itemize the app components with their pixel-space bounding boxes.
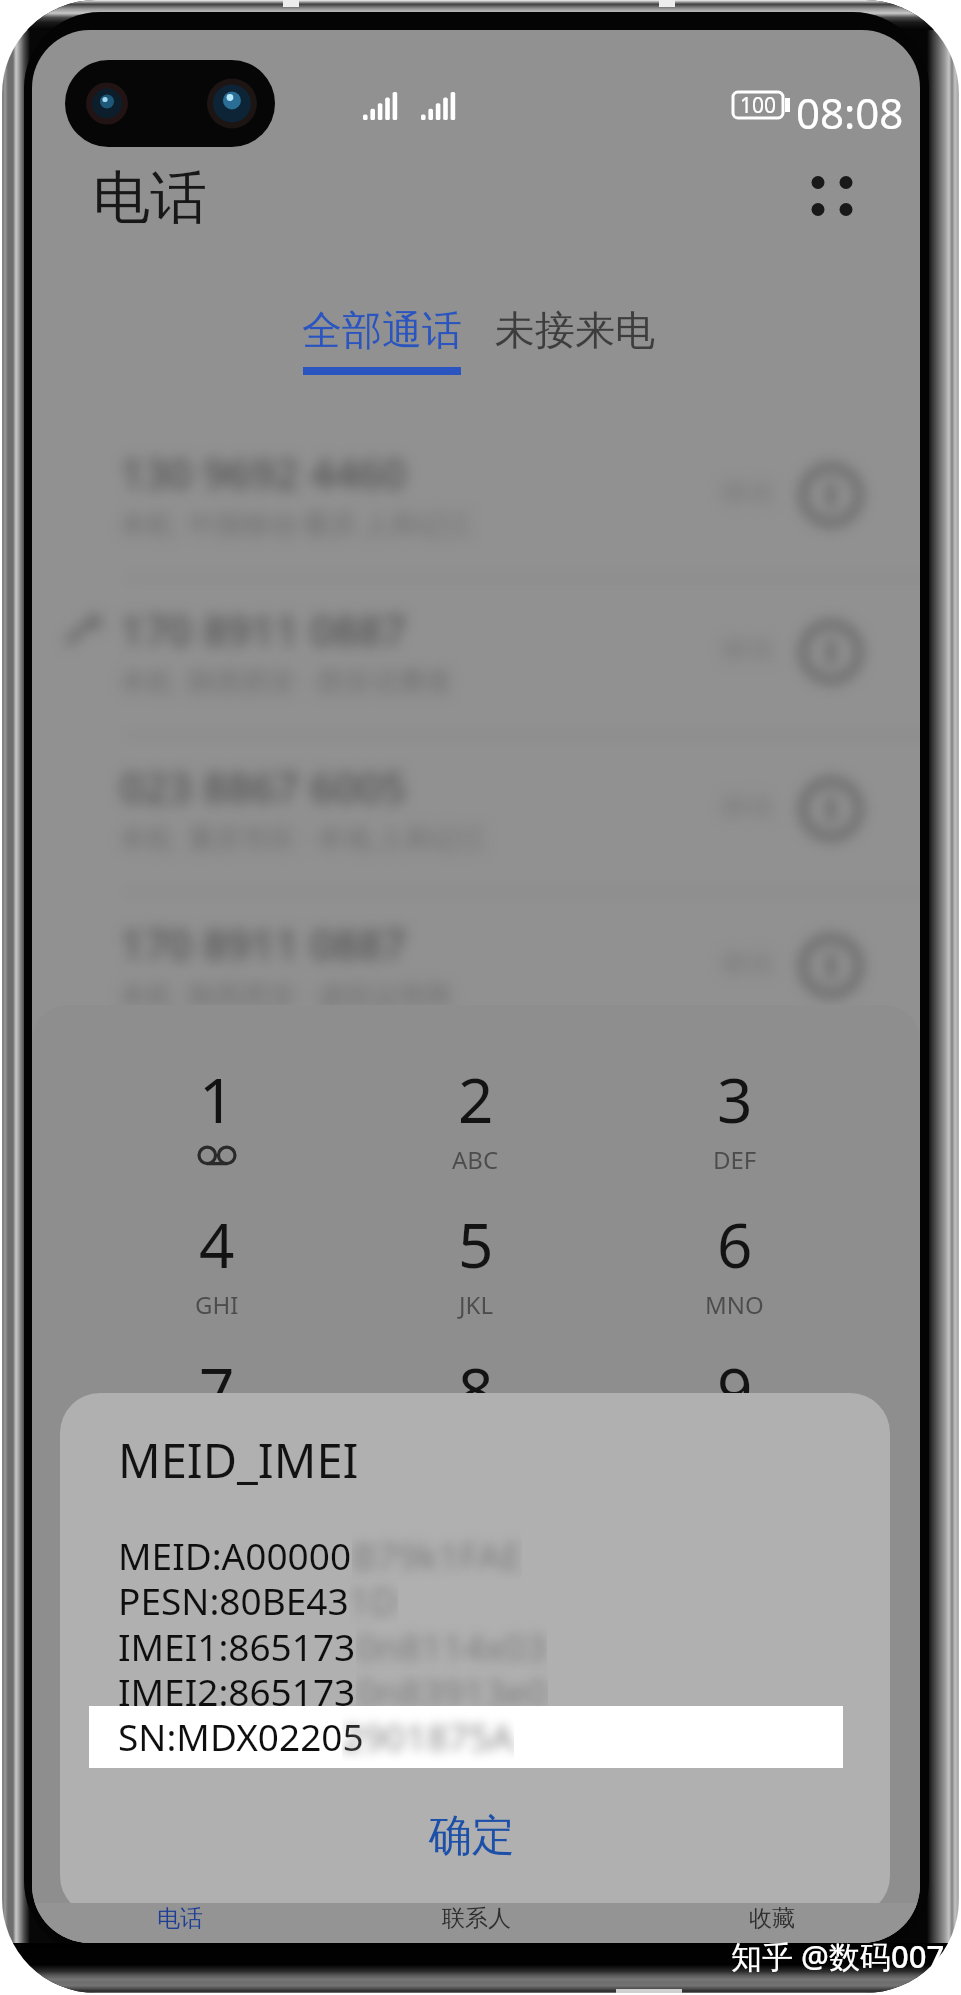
staticText: MEID_IMEI	[118, 1428, 359, 1492]
staticText: 08:08	[796, 84, 904, 141]
button[interactable]: 023 8867 6005	[32, 734, 920, 891]
staticText: 确定	[429, 1809, 515, 1863]
staticText: B79k1FAE	[352, 1530, 522, 1580]
button[interactable]: 确定	[60, 1778, 890, 1896]
staticText: 0n8114x03	[356, 1621, 547, 1671]
staticText: 本机 重庆市区 · 本地 人和记江	[120, 819, 487, 856]
staticText: PESN:80BE43	[118, 1575, 349, 1625]
staticText: JKL	[459, 1288, 493, 1321]
staticText: MEID:A00000	[118, 1530, 352, 1580]
staticText: 170 8911 0887	[120, 915, 407, 972]
staticText: 知乎 @数码007	[731, 1935, 945, 1977]
button[interactable]: 联系人	[328, 1903, 624, 1943]
staticText: 1	[199, 1057, 235, 1141]
staticText: 本机 中国移动·重庆 人和记江	[120, 505, 473, 542]
button[interactable]: 7	[88, 1347, 346, 1492]
staticText: 4	[199, 1202, 235, 1286]
staticText: 023 8867 6005	[120, 758, 407, 815]
button[interactable]: 全部通话	[302, 305, 462, 375]
button[interactable]: 9	[605, 1347, 864, 1492]
staticText: 5	[458, 1202, 494, 1286]
staticText: 9	[717, 1347, 753, 1431]
staticText: 7	[199, 1347, 235, 1431]
staticText: GHI	[195, 1288, 239, 1321]
staticText: 8	[458, 1347, 494, 1431]
button[interactable]: 电话	[32, 1903, 328, 1943]
staticText: 0n83913e0	[356, 1666, 548, 1716]
staticText: 本机 陕西西安 · 西安话费查	[120, 662, 453, 699]
staticText: ABC	[452, 1143, 499, 1176]
button[interactable]: 4	[88, 1202, 346, 1347]
button[interactable]: 6	[605, 1202, 864, 1347]
staticText: 电话	[157, 1904, 203, 1933]
staticText: 170 8911 0887	[120, 601, 407, 658]
staticText: 本机 陕西西安 · 虚拟运营商	[120, 976, 453, 1013]
staticText: 全部通话	[302, 305, 462, 355]
button[interactable]: 170 8911 0887	[32, 891, 920, 1048]
staticText: 2901875A	[342, 1711, 514, 1761]
button[interactable]: 170 8911 0887	[32, 577, 920, 734]
button[interactable]: 130 9692 4460	[32, 420, 920, 577]
button[interactable]: 2	[346, 1057, 605, 1202]
button[interactable]: 5	[346, 1202, 605, 1347]
button[interactable]: 收藏	[624, 1903, 920, 1943]
staticText: PQRS	[186, 1433, 248, 1466]
staticText: 2	[458, 1057, 494, 1141]
staticText: MNO	[705, 1288, 764, 1321]
staticText: 3	[717, 1057, 753, 1141]
staticText: 1D	[349, 1575, 398, 1625]
button[interactable]: 未接来电	[495, 305, 655, 355]
button[interactable]: 8	[346, 1347, 605, 1492]
staticText: 收藏	[749, 1904, 795, 1933]
button[interactable]: 更多选项	[788, 152, 876, 240]
staticText: IMEI2:865173	[118, 1666, 356, 1716]
button[interactable]: 1	[88, 1057, 346, 1202]
staticText: 6	[717, 1202, 753, 1286]
staticText: DEF	[713, 1143, 757, 1176]
staticText: SN:MDX02205	[118, 1711, 364, 1761]
staticText: IMEI1:865173	[118, 1621, 356, 1671]
staticText: 联系人	[442, 1904, 511, 1933]
staticText: 100	[740, 91, 777, 117]
button[interactable]: 3	[605, 1057, 864, 1202]
staticText: 130 9692 4460	[120, 444, 407, 501]
button[interactable]: 电话	[93, 162, 207, 234]
